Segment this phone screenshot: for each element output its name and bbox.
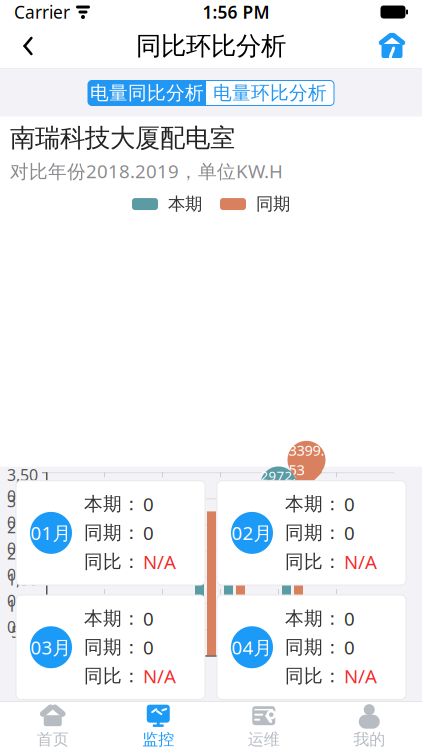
button[interactable]: 我的 bbox=[316, 699, 422, 750]
staticText: 同比： bbox=[285, 550, 342, 573]
staticText: N/A bbox=[344, 664, 377, 688]
staticText: 电量同比分析 bbox=[90, 81, 204, 104]
staticText: 同期： bbox=[285, 636, 342, 659]
staticText: 运维 bbox=[248, 730, 280, 749]
staticText: 02月 bbox=[231, 520, 272, 545]
staticText: 03月 bbox=[30, 635, 71, 660]
button[interactable]: 监控 bbox=[105, 699, 211, 750]
staticText: 同期 bbox=[256, 193, 290, 215]
button[interactable]: 01月 bbox=[16, 481, 205, 585]
staticText: 我的 bbox=[353, 730, 385, 749]
staticText: 0 bbox=[50, 619, 57, 635]
button[interactable]: 电量同比分析 bbox=[88, 80, 206, 105]
staticText: 本期： bbox=[285, 493, 342, 515]
button[interactable]: 首页 bbox=[0, 699, 105, 750]
staticText: 0 bbox=[143, 720, 154, 745]
staticText: N/A bbox=[344, 549, 377, 574]
staticText: 本期： bbox=[285, 607, 342, 630]
staticText: 本期： bbox=[84, 607, 141, 630]
staticText: 1,500 bbox=[7, 569, 38, 611]
button[interactable]: 06月 bbox=[217, 709, 406, 750]
staticText: 0 bbox=[29, 647, 38, 668]
staticText: 同期： bbox=[84, 636, 141, 659]
staticText: 监控 bbox=[142, 730, 174, 749]
staticText: 1月 bbox=[47, 662, 74, 685]
staticText: 01月 bbox=[30, 520, 71, 545]
staticText: 2,500 bbox=[7, 516, 38, 559]
staticText: 11月 bbox=[332, 662, 369, 685]
staticText: 1,000 bbox=[7, 595, 38, 637]
staticText: Carrier bbox=[14, 0, 70, 23]
staticText: 本期： bbox=[84, 493, 141, 515]
staticText: 同比： bbox=[84, 550, 141, 573]
button[interactable]: 05月 bbox=[16, 709, 205, 750]
staticText: N/A bbox=[143, 664, 176, 688]
staticText: 同期： bbox=[84, 521, 141, 544]
staticText: 3,000 bbox=[7, 490, 38, 533]
button[interactable]: 03月 bbox=[16, 595, 205, 699]
staticText: 电量环比分析 bbox=[213, 81, 327, 104]
staticText: 2,000 bbox=[7, 543, 38, 585]
staticText: 0 bbox=[344, 606, 355, 631]
button[interactable]: 运维 bbox=[211, 699, 316, 750]
staticText: 7月 bbox=[221, 662, 248, 685]
staticText: 对比年份2018.2019，单位KW.H bbox=[10, 159, 283, 183]
staticText: 同比环比分析 bbox=[136, 30, 286, 61]
staticText: 同期： bbox=[285, 521, 342, 544]
button[interactable]: 电量环比分析 bbox=[206, 80, 334, 105]
button[interactable]: Home bbox=[368, 24, 416, 68]
button[interactable]: 04月 bbox=[217, 595, 406, 699]
button[interactable]: 02月 bbox=[217, 481, 406, 585]
staticText: 1:56 PM bbox=[202, 0, 269, 23]
staticText: 04月 bbox=[231, 635, 272, 660]
staticText: 0 bbox=[143, 492, 154, 516]
staticText: 3,500 bbox=[7, 464, 38, 507]
staticText: 0 bbox=[143, 635, 154, 660]
staticText: 0 bbox=[143, 520, 154, 545]
staticText: 南瑞科技大厦配电室 bbox=[10, 122, 235, 154]
staticText: N/A bbox=[143, 549, 176, 574]
staticText: 2692 bbox=[344, 720, 388, 745]
staticText: 0 bbox=[344, 520, 355, 545]
staticText: 0 bbox=[344, 635, 355, 660]
staticText: 3399.53 bbox=[288, 440, 324, 479]
staticText: 首页 bbox=[37, 730, 69, 749]
staticText: 同比： bbox=[84, 665, 141, 687]
staticText: 同比： bbox=[285, 665, 342, 687]
staticText: 500 bbox=[11, 621, 38, 642]
staticText: 9月 bbox=[279, 662, 306, 685]
button[interactable]: Back bbox=[6, 24, 50, 68]
staticText: 2972.3 bbox=[260, 467, 296, 502]
staticText: 5月 bbox=[163, 662, 190, 685]
staticText: 3月 bbox=[105, 662, 132, 685]
staticText: 0 bbox=[143, 606, 154, 631]
staticText: 0 bbox=[344, 492, 355, 516]
staticText: 本期 bbox=[168, 193, 202, 215]
